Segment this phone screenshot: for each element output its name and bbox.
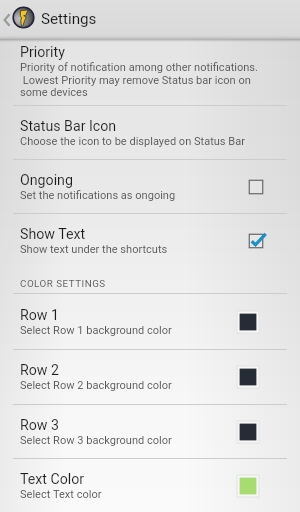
button[interactable]: Text Color [0,459,300,512]
staticText: Row 2 [20,362,59,379]
staticText: Settings [41,10,97,28]
button[interactable]: Choose color [233,362,263,392]
staticText: Select Row 1 background color [20,324,172,337]
staticText: Priority [20,44,65,61]
button[interactable]: Unchecked [241,172,271,202]
button[interactable]: Status Bar Icon [0,106,300,159]
button[interactable]: Choose color [233,307,263,337]
button[interactable]: Row 2 [0,350,300,404]
staticText: Status Bar Icon [20,118,117,135]
staticText: Priority of notification among other not… [20,61,265,99]
button[interactable]: Row 1 [0,294,300,349]
button[interactable]: Checked [241,226,271,256]
staticText: Choose the icon to be displayed on Statu… [20,135,245,148]
button[interactable]: Priority [0,39,300,105]
button[interactable]: Show Text [0,214,300,267]
button[interactable]: Choose color [233,471,263,501]
staticText: Set the notifications as ongoing [20,189,176,202]
staticText: Show Text [20,226,86,243]
staticText: Row 1 [20,307,59,324]
button[interactable]: Ongoing [0,160,300,213]
staticText: Text Color [20,471,85,488]
staticText: Select Row 3 background color [20,434,172,447]
staticText: COLOR SETTINGS [20,278,106,289]
button[interactable]: Row 3 [0,405,300,458]
staticText: Select Text color [20,488,102,501]
staticText: Ongoing [20,172,73,189]
staticText: Row 3 [20,417,59,434]
button[interactable]: Navigate up [0,0,300,39]
button[interactable]: Choose color [233,417,263,447]
staticText: Show text under the shortcuts [20,243,168,256]
staticText: Select Row 2 background color [20,379,172,392]
